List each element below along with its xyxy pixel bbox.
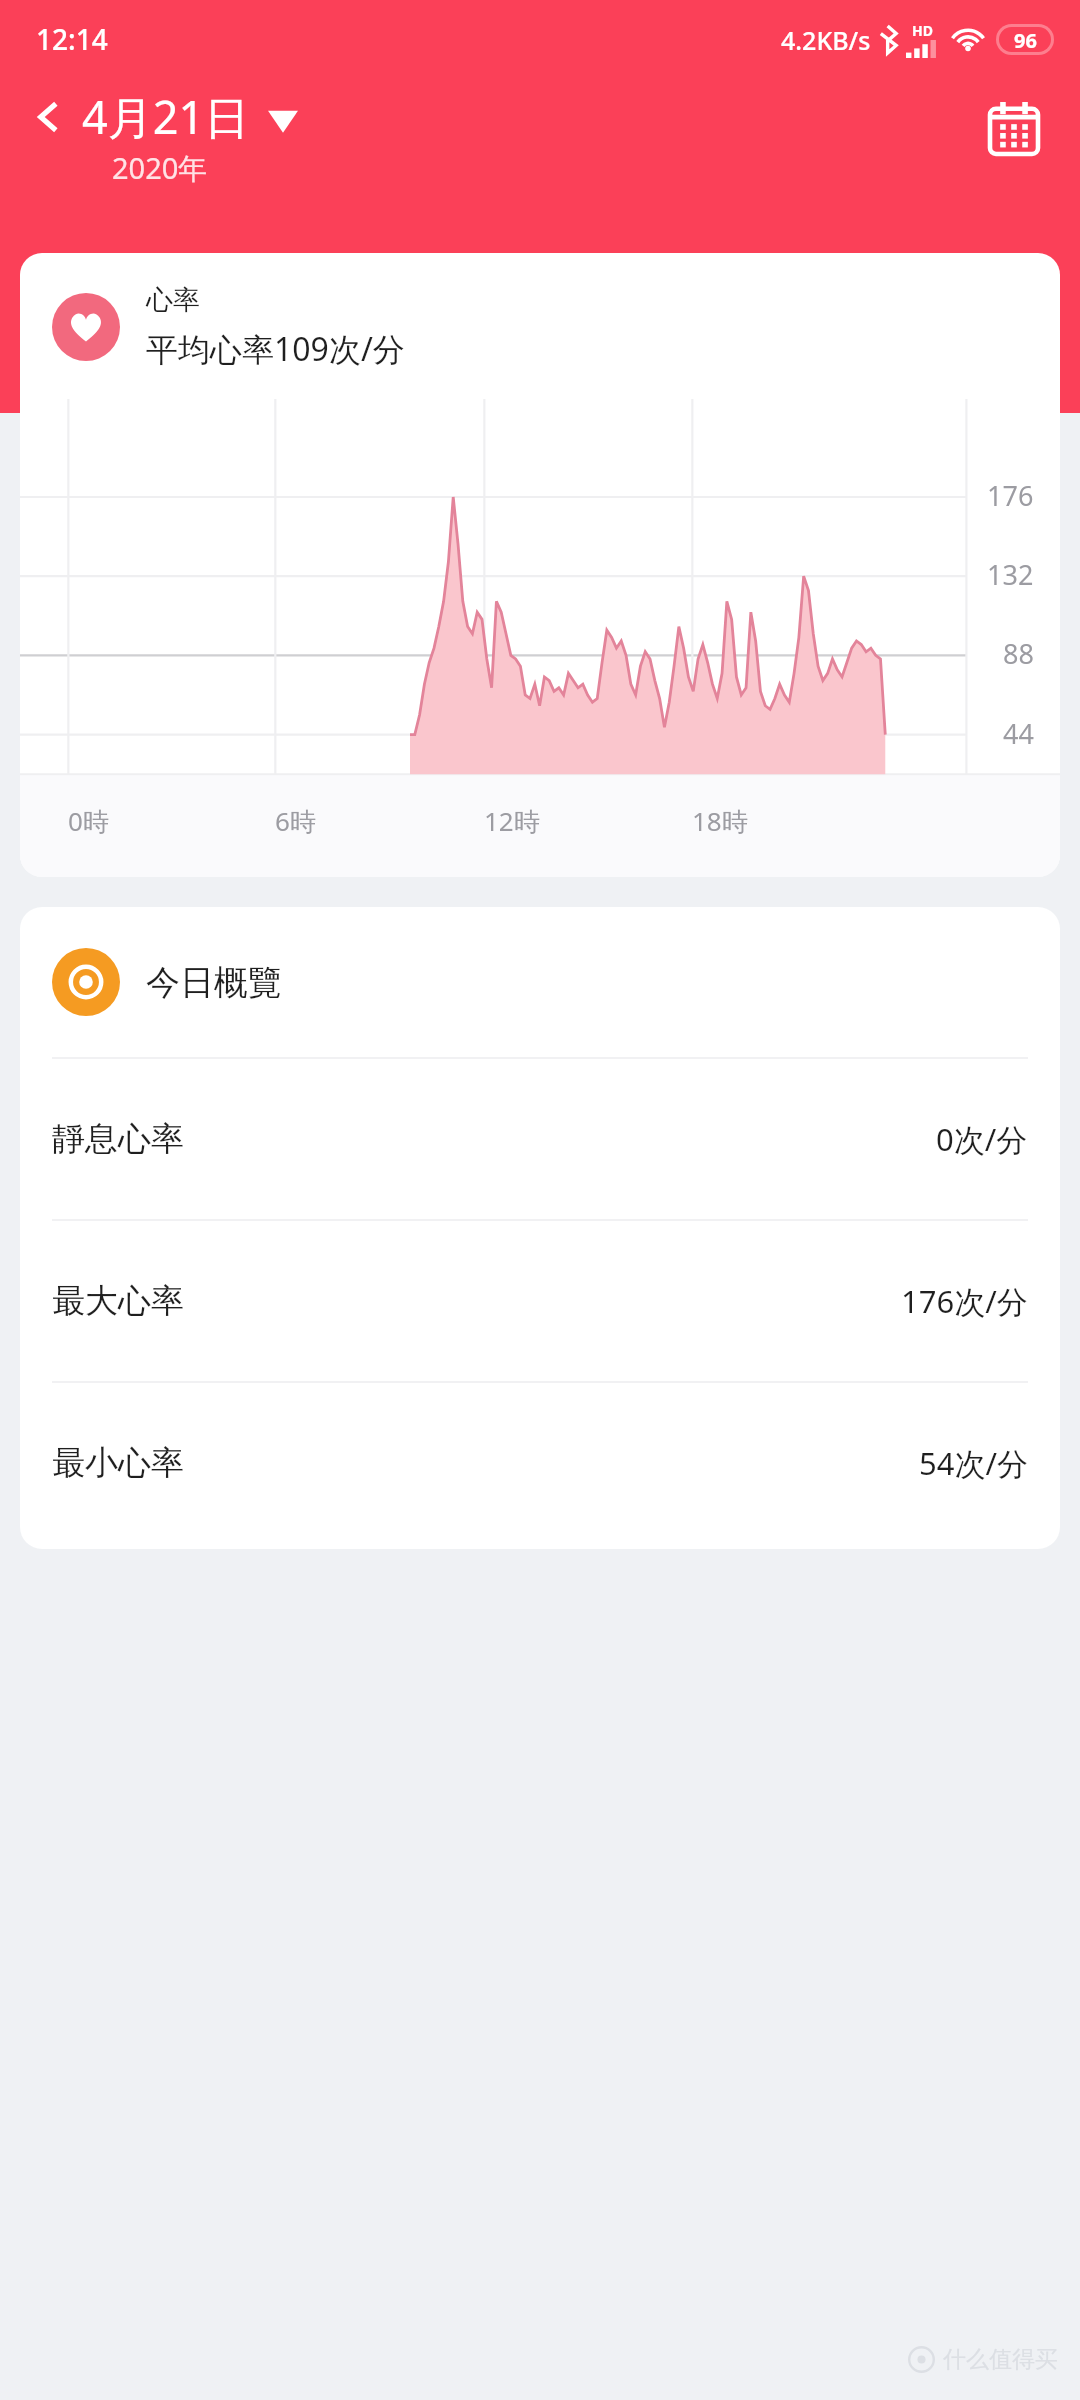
staticText: 6時 — [275, 803, 316, 839]
staticText: 0時 — [68, 803, 109, 839]
button[interactable]: 靜息心率 — [20, 1059, 1060, 1219]
staticText: 12:14 — [36, 20, 108, 58]
staticText: 靜息心率 — [52, 1118, 184, 1160]
staticText: 176 — [987, 477, 1034, 514]
staticText: 平均心率109次/分 — [146, 327, 405, 371]
staticText: 88 — [1003, 635, 1034, 672]
button[interactable]: 今日概覽 — [20, 907, 1060, 1057]
staticText: 96 — [1014, 27, 1037, 52]
staticText: 18時 — [692, 803, 748, 839]
staticText: 4.2KB/s — [781, 23, 871, 57]
staticText: 12時 — [484, 803, 540, 839]
staticText: 最大心率 — [52, 1280, 184, 1322]
button[interactable]: 最大心率 — [20, 1221, 1060, 1381]
staticText: 54次/分 — [919, 1442, 1028, 1484]
staticText: HD — [912, 21, 933, 40]
staticText: 最小心率 — [52, 1442, 184, 1484]
button[interactable]: Back — [34, 86, 298, 147]
staticText: 2020年 — [112, 148, 208, 188]
staticText: 0次/分 — [936, 1118, 1028, 1160]
other: Back — [34, 95, 62, 139]
button[interactable]: 最小心率 — [20, 1383, 1060, 1543]
staticText: 132 — [987, 556, 1034, 593]
button[interactable]: Calendar — [980, 94, 1048, 162]
button[interactable]: 心率 — [20, 253, 1060, 877]
staticText: 4月21日 — [82, 86, 250, 147]
staticText: 176次/分 — [901, 1280, 1028, 1322]
staticText: 心率 — [146, 283, 200, 317]
staticText: 今日概覽 — [146, 961, 282, 1004]
staticText: 44 — [1003, 715, 1034, 752]
staticText: 什么值得买 — [943, 2345, 1058, 2374]
